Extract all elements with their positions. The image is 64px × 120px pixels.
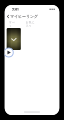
staticText: ▪▪▪ — [49, 7, 55, 10]
staticText: すべて — [9, 21, 15, 27]
staticText: マイヒーリング — [10, 14, 38, 19]
button[interactable] — [7, 28, 21, 50]
button[interactable]: マイヒーリング — [5, 14, 38, 19]
staticText: お気に入り — [26, 21, 35, 27]
button[interactable]: すべて — [8, 21, 16, 27]
staticText: 9:41 — [12, 6, 19, 12]
button[interactable]: Play — [4, 48, 13, 57]
button[interactable]: お気に入り — [25, 21, 36, 27]
